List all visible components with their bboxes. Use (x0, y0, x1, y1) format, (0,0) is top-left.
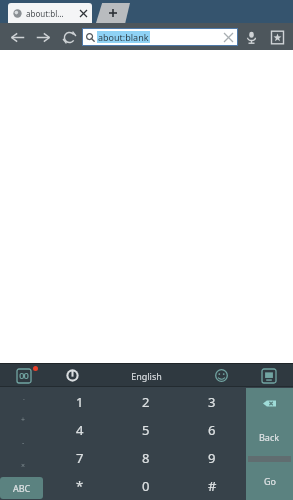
button[interactable]: 6 (179, 416, 245, 444)
button[interactable]: Bookmarks (264, 24, 290, 50)
button[interactable]: 5 (113, 416, 179, 444)
staticText: 6 (208, 421, 216, 439)
staticText: 9 (208, 449, 216, 467)
button[interactable]: 7 (47, 444, 113, 472)
staticText: 4 (76, 421, 84, 439)
button[interactable]: # (179, 472, 245, 500)
button[interactable]: Close tab (75, 5, 91, 21)
staticText: English (131, 370, 162, 382)
button[interactable]: Delete (246, 388, 293, 418)
staticText: 0 (142, 477, 150, 495)
staticText: about:blank (98, 31, 149, 43)
button[interactable]: 3 (179, 387, 245, 416)
staticText: Back (259, 431, 280, 443)
staticText: 7 (76, 449, 84, 467)
button[interactable]: Keyboard layout (245, 364, 293, 387)
staticText: 1 (76, 393, 84, 411)
staticText: * (76, 477, 84, 495)
staticText: + (21, 415, 26, 425)
staticText: - (22, 438, 25, 448)
staticText: about:bl… (26, 8, 64, 19)
button[interactable]: * (47, 472, 113, 500)
button[interactable]: about:bl… (8, 3, 92, 23)
staticText: # (208, 477, 217, 495)
button[interactable]: Voice search (238, 24, 264, 50)
button[interactable]: Back (4, 24, 30, 50)
button[interactable]: Forward (30, 24, 56, 50)
button[interactable]: about:blank (83, 29, 237, 45)
staticText: ABC (13, 482, 31, 494)
button[interactable]: 4 (47, 416, 113, 444)
staticText: 5 (142, 421, 150, 439)
button[interactable]: New tab (96, 3, 130, 23)
staticText: Go (264, 475, 276, 487)
staticText: . (23, 393, 25, 403)
button[interactable]: Back (246, 418, 293, 456)
button[interactable]: 0 (113, 472, 179, 500)
staticText: × (21, 461, 26, 471)
button[interactable]: Go (246, 462, 293, 500)
button[interactable]: Clipboard (0, 364, 48, 387)
button[interactable]: Settings (48, 364, 96, 387)
button[interactable]: 2 (113, 387, 179, 416)
button[interactable]: 1 (47, 387, 113, 416)
staticText: 2 (142, 393, 150, 411)
button[interactable]: 9 (179, 444, 245, 472)
staticText: 8 (142, 449, 150, 467)
button[interactable]: English (96, 364, 197, 387)
staticText: 3 (208, 393, 216, 411)
button[interactable]: Clear (220, 29, 236, 45)
button[interactable]: 8 (113, 444, 179, 472)
button[interactable]: Emoji (197, 364, 245, 387)
button[interactable]: ABC (0, 477, 43, 499)
button[interactable]: Reload (56, 24, 82, 50)
